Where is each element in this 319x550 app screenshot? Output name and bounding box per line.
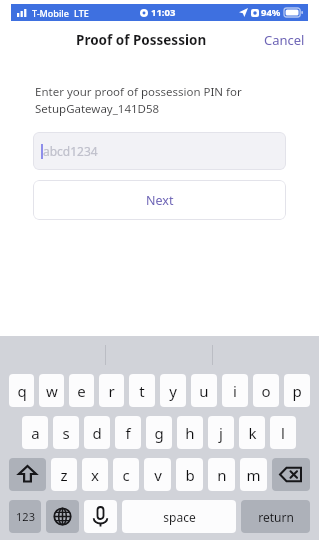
staticText: w bbox=[46, 381, 58, 401]
button[interactable]: w bbox=[39, 374, 64, 407]
button[interactable]: g bbox=[146, 416, 172, 449]
button[interactable]: v bbox=[144, 458, 171, 491]
button[interactable]: Shift bbox=[9, 458, 46, 491]
staticText: T-Mobile bbox=[32, 7, 69, 19]
staticText: i bbox=[233, 381, 237, 401]
staticText: p bbox=[292, 381, 302, 401]
button[interactable]: c bbox=[113, 458, 139, 491]
button[interactable]: 123 bbox=[9, 500, 41, 533]
button[interactable]: b bbox=[176, 458, 203, 491]
staticText: 94% bbox=[261, 6, 281, 19]
staticText: f bbox=[125, 423, 131, 443]
staticText: l bbox=[281, 423, 285, 443]
button[interactable]: z bbox=[51, 458, 77, 491]
button[interactable]: j bbox=[208, 416, 234, 449]
staticText: u bbox=[199, 381, 209, 401]
staticText: c bbox=[122, 465, 130, 485]
button[interactable]: space bbox=[122, 500, 236, 533]
staticText: Enter your proof of possession PIN for S… bbox=[35, 84, 242, 116]
button[interactable]: q bbox=[9, 374, 34, 407]
button[interactable]: return bbox=[241, 500, 310, 533]
button[interactable]: i bbox=[222, 374, 248, 407]
button[interactable]: x bbox=[82, 458, 108, 491]
staticText: s bbox=[62, 423, 70, 443]
button[interactable]: h bbox=[177, 416, 203, 449]
button[interactable]: f bbox=[115, 416, 141, 449]
staticText: z bbox=[60, 465, 68, 485]
staticText: Cancel bbox=[264, 31, 305, 49]
staticText: b bbox=[185, 465, 195, 485]
staticText: Next bbox=[146, 192, 174, 209]
staticText: a bbox=[31, 423, 40, 443]
button[interactable]: y bbox=[160, 374, 186, 407]
button[interactable]: p bbox=[284, 374, 310, 407]
button[interactable]: a bbox=[22, 416, 48, 449]
button[interactable]: Cancel bbox=[250, 23, 319, 57]
staticText: return bbox=[258, 509, 294, 525]
staticText: 123 bbox=[16, 509, 35, 524]
staticText: x bbox=[91, 465, 99, 485]
button[interactable]: r bbox=[99, 374, 124, 407]
button[interactable]: l bbox=[270, 416, 296, 449]
staticText: j bbox=[219, 423, 223, 443]
button[interactable]: s bbox=[53, 416, 79, 449]
staticText: Proof of Possession bbox=[76, 31, 207, 49]
button[interactable]: n bbox=[208, 458, 235, 491]
button[interactable]: d bbox=[84, 416, 110, 449]
staticText: space bbox=[163, 509, 196, 525]
button[interactable]: k bbox=[239, 416, 265, 449]
button[interactable]: Backspace bbox=[272, 458, 310, 491]
staticText: g bbox=[154, 423, 164, 443]
staticText: q bbox=[17, 381, 27, 401]
staticText: n bbox=[217, 465, 227, 485]
staticText: r bbox=[108, 381, 115, 401]
staticText: v bbox=[154, 465, 162, 485]
staticText: d bbox=[92, 423, 102, 443]
staticText: 11:03 bbox=[151, 6, 176, 19]
staticText: k bbox=[248, 423, 257, 443]
staticText: e bbox=[77, 381, 86, 401]
button[interactable]: Dictate bbox=[84, 500, 117, 533]
staticText: h bbox=[185, 423, 195, 443]
staticText: m bbox=[246, 465, 261, 485]
button[interactable]: e bbox=[69, 374, 94, 407]
staticText: y bbox=[169, 381, 177, 401]
button[interactable]: u bbox=[191, 374, 217, 407]
staticText: o bbox=[261, 381, 271, 401]
staticText: abcd1234 bbox=[43, 143, 98, 159]
button[interactable]: o bbox=[253, 374, 279, 407]
button[interactable]: m bbox=[240, 458, 267, 491]
staticText: t bbox=[139, 381, 145, 401]
staticText: LTE bbox=[74, 7, 89, 19]
button[interactable]: Next bbox=[33, 180, 286, 220]
button[interactable]: abcd1234 bbox=[33, 132, 286, 170]
button[interactable]: Switch keyboard bbox=[46, 500, 79, 533]
button[interactable]: t bbox=[129, 374, 155, 407]
